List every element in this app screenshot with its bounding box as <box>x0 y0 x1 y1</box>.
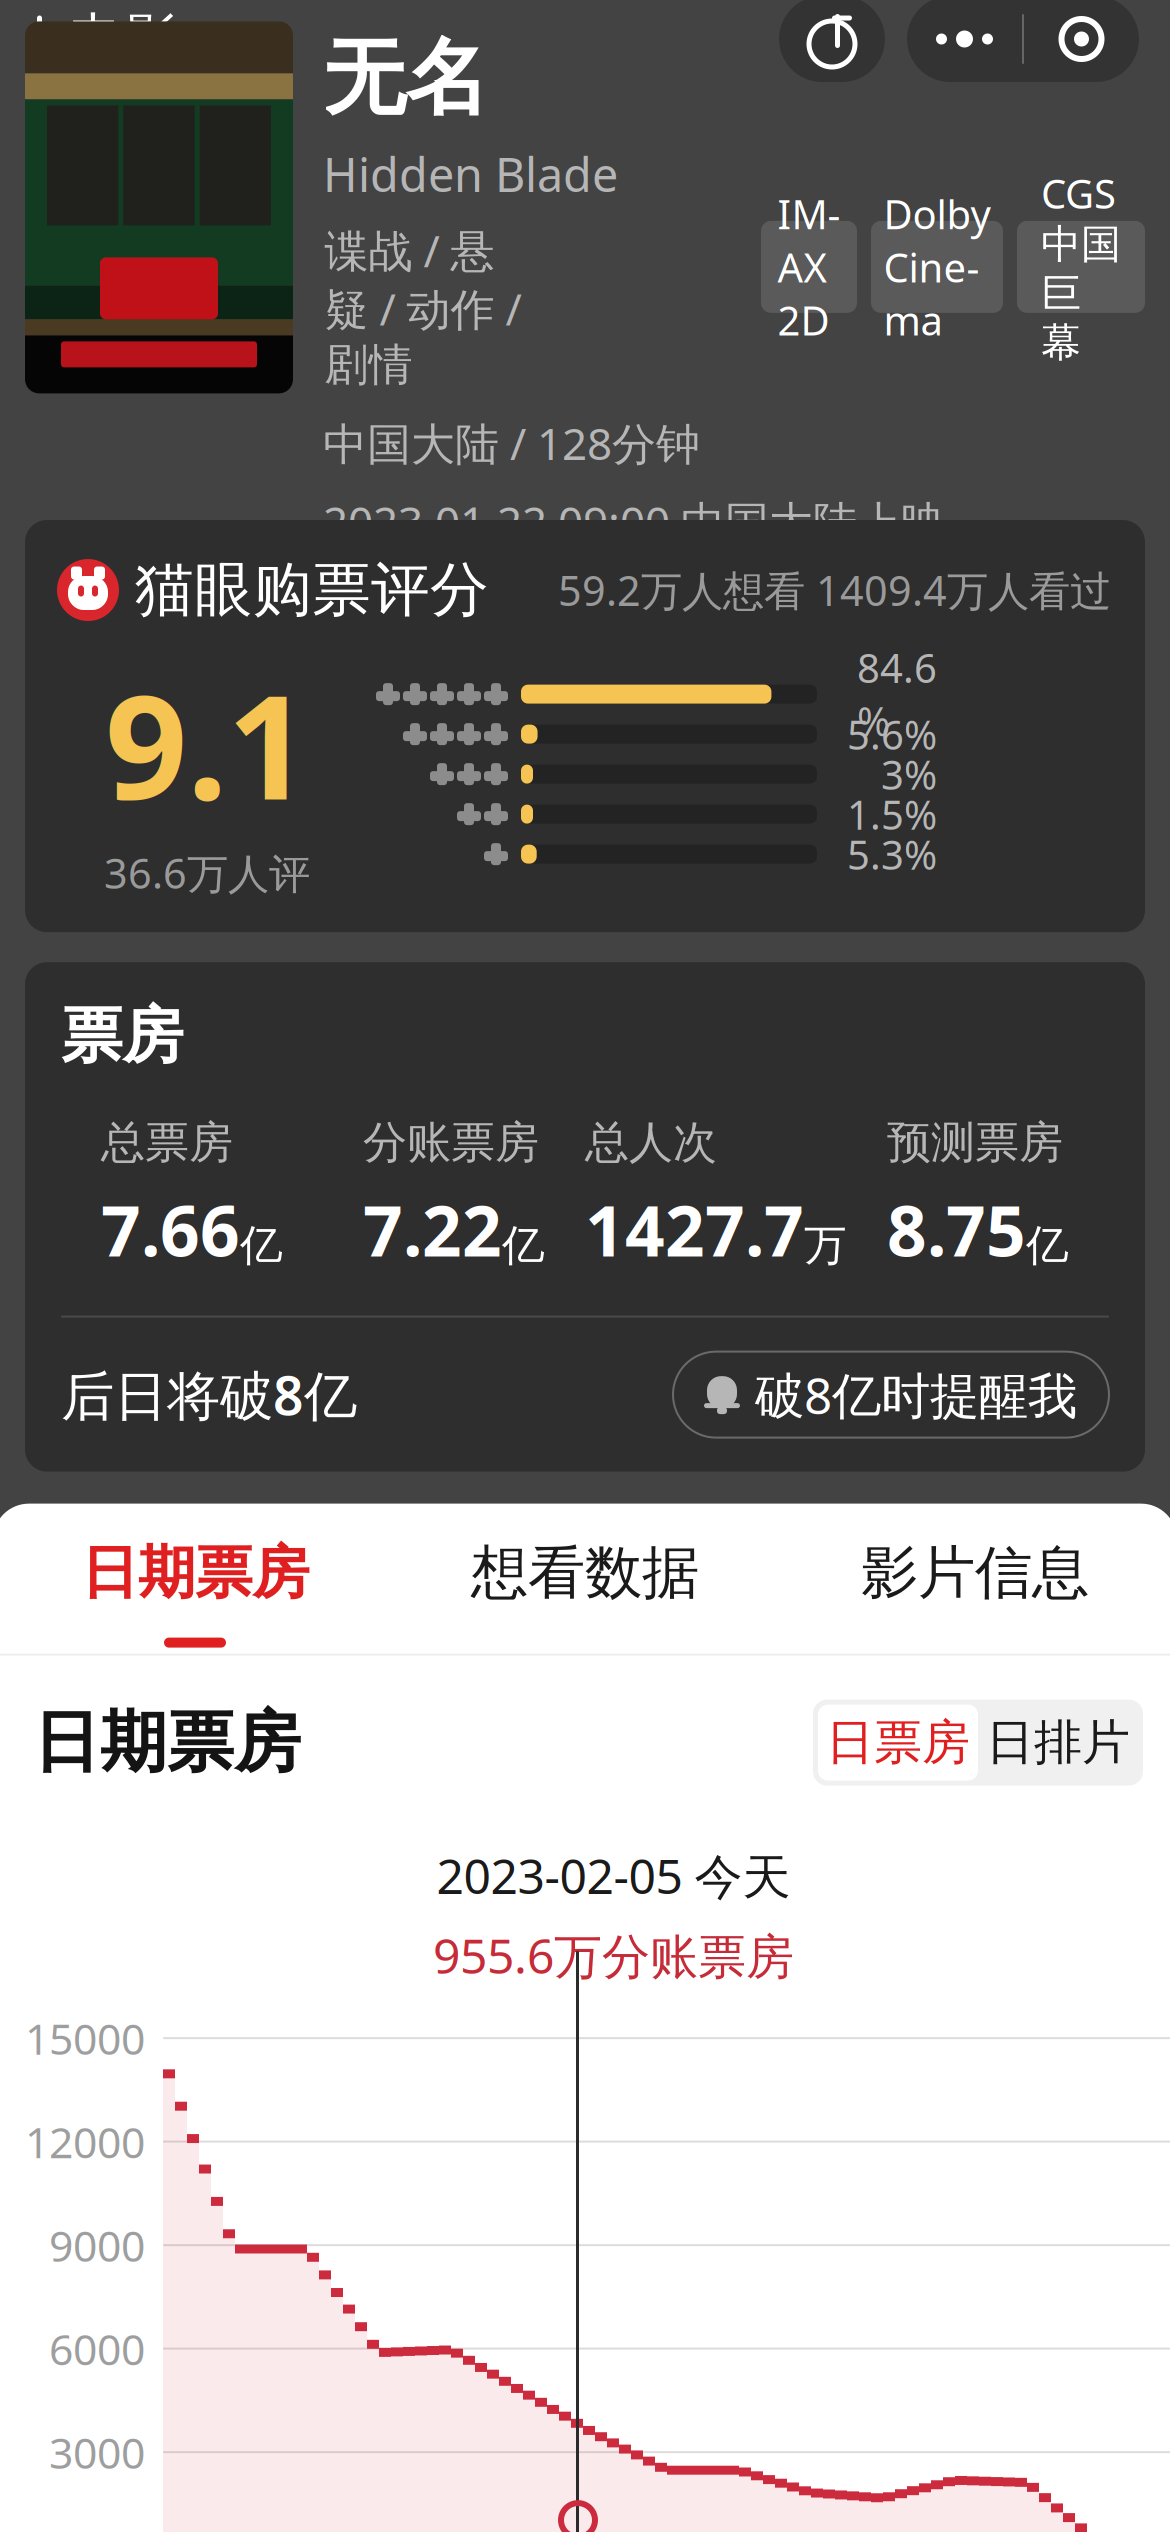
staticText: 5.3% <box>847 828 937 881</box>
staticText: 票房 <box>61 998 183 1073</box>
staticText: 955.6万分账票房 <box>433 1923 794 1987</box>
button[interactable]: 日票房 <box>818 1705 978 1781</box>
staticText: 59.2万人想看 1409.4万人看过 <box>558 563 1111 617</box>
staticText: 猫眼购票评分 <box>135 554 489 626</box>
staticText: 谍战 / 悬疑 / 动作 / 剧情 <box>324 221 521 392</box>
staticText: 7.22 <box>363 1184 502 1276</box>
staticText: 日排片 <box>986 1713 1130 1772</box>
staticText: 预测票房 <box>887 1115 1063 1169</box>
staticText: 1427.7 <box>585 1184 804 1276</box>
staticText: 7.66 <box>101 1184 240 1276</box>
staticText: 万 <box>804 1219 847 1272</box>
staticText: 破8亿时提醒我 <box>755 1362 1077 1427</box>
button[interactable]: 想看数据 <box>390 1538 780 1654</box>
staticText: Dolby Cinema <box>883 187 990 347</box>
staticText: 84.6% <box>857 641 937 747</box>
staticText: 亿 <box>1026 1219 1069 1272</box>
staticText: 总票房 <box>101 1115 233 1169</box>
button[interactable]: 日期票房 <box>0 1538 390 1654</box>
staticText: 8.75 <box>887 1184 1026 1276</box>
staticText: 6000 <box>49 2320 145 2377</box>
staticText: 2023.01.22 09:00 中国大陆上映 <box>323 492 945 551</box>
staticText: 中国大陆 / 128分钟 <box>323 414 700 472</box>
button[interactable]: 日排片 <box>978 1705 1138 1781</box>
button[interactable]: 关闭 <box>1024 0 1139 82</box>
staticText: 分账票房 <box>363 1115 539 1169</box>
staticText: 影片信息 <box>861 1538 1089 1608</box>
staticText: 5.6% <box>847 708 937 761</box>
staticText: 12000 <box>25 2113 145 2170</box>
staticText: 电影 <box>69 5 179 72</box>
staticText: CGS中国巨 幕 <box>1041 167 1121 367</box>
staticText: 3% <box>881 748 937 801</box>
staticText: 总人次 <box>585 1115 717 1169</box>
button[interactable]: 破8亿时提醒我 <box>673 1352 1109 1438</box>
staticText: 9.1 <box>105 648 309 839</box>
staticText: 后日将破8亿 <box>61 1359 357 1430</box>
button[interactable]: 分享 <box>779 0 885 82</box>
staticText: 1.5% <box>847 788 937 841</box>
staticText: Hidden Blade <box>323 143 618 205</box>
button[interactable]: 影片信息 <box>780 1538 1170 1654</box>
staticText: 15000 <box>25 2010 145 2066</box>
staticText: IMAX 2D <box>777 187 840 347</box>
staticText: 日期票房 <box>33 1702 301 1784</box>
staticText: 日票房 <box>826 1713 970 1772</box>
staticText: 想看数据 <box>471 1538 699 1608</box>
staticText: 36.6万人评 <box>104 845 310 900</box>
staticText: 亿 <box>502 1219 545 1272</box>
staticText: 无名 <box>323 27 489 129</box>
staticText: 日期票房 <box>81 1538 309 1608</box>
staticText: 9000 <box>49 2217 145 2273</box>
staticText: 3000 <box>49 2424 145 2480</box>
staticText: 2023-02-05 今天 <box>436 1844 790 1907</box>
button[interactable]: 更多 <box>907 0 1022 82</box>
button[interactable]: 电影 <box>0 0 193 82</box>
staticText: 亿 <box>240 1219 283 1272</box>
